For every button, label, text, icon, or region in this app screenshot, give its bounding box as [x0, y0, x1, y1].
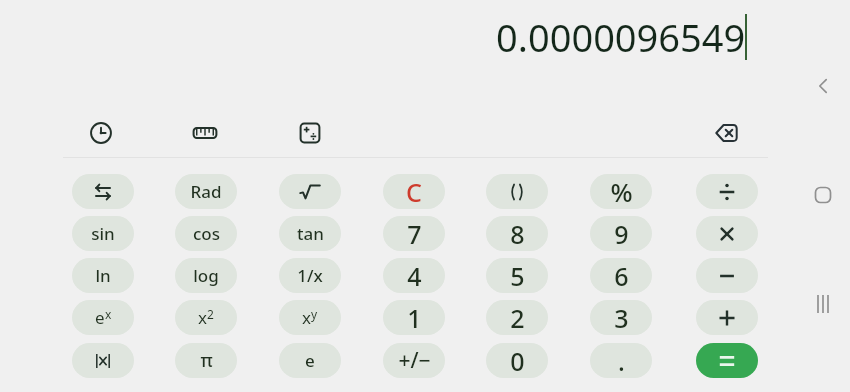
- button[interactable]: Parentheses: [486, 174, 548, 209]
- staticText: 5: [510, 259, 525, 293]
- button[interactable]: 6: [590, 258, 652, 293]
- button[interactable]: 2: [486, 300, 548, 335]
- staticText: C: [406, 175, 422, 209]
- button[interactable]: cos: [175, 216, 237, 251]
- staticText: 4: [407, 259, 422, 293]
- button[interactable]: e: [72, 300, 134, 335]
- staticText: cos: [193, 222, 220, 245]
- button[interactable]: 0: [486, 343, 548, 378]
- staticText: 6: [614, 259, 629, 293]
- staticText: +/−: [398, 346, 431, 375]
- staticText: 8: [510, 217, 525, 251]
- button[interactable]: 1: [383, 300, 445, 335]
- staticText: y: [311, 306, 318, 322]
- staticText: 3: [614, 301, 629, 335]
- button[interactable]: Swap: [72, 174, 134, 209]
- button[interactable]: x: [279, 300, 341, 335]
- button[interactable]: 3: [590, 300, 652, 335]
- staticText: x: [302, 306, 311, 329]
- button[interactable]: 1/x: [279, 258, 341, 293]
- button[interactable]: 9: [590, 216, 652, 251]
- button[interactable]: sin: [72, 216, 134, 251]
- button[interactable]: Plus: [696, 300, 758, 335]
- staticText: ln: [95, 264, 111, 287]
- button[interactable]: 7: [383, 216, 445, 251]
- button[interactable]: ln: [72, 258, 134, 293]
- staticText: x: [198, 306, 207, 329]
- button[interactable]: History: [79, 111, 123, 155]
- staticText: 9: [614, 217, 629, 251]
- staticText: 0.0000096549: [496, 11, 746, 63]
- staticText: π: [200, 348, 213, 373]
- staticText: x: [105, 306, 112, 322]
- button[interactable]: Minus: [696, 258, 758, 293]
- button[interactable]: Home: [801, 173, 845, 217]
- staticText: 0: [510, 344, 525, 378]
- button[interactable]: 8: [486, 216, 548, 251]
- staticText: 2: [510, 301, 525, 335]
- staticText: .: [618, 344, 625, 378]
- button[interactable]: 4: [383, 258, 445, 293]
- button[interactable]: Equals: [696, 343, 758, 378]
- staticText: 7: [407, 217, 422, 251]
- staticText: log: [193, 264, 219, 287]
- button[interactable]: Square root: [279, 174, 341, 209]
- button[interactable]: x: [175, 300, 237, 335]
- button[interactable]: Backspace: [704, 111, 748, 155]
- button[interactable]: Recent apps: [801, 282, 845, 326]
- staticText: tan: [297, 222, 324, 245]
- button[interactable]: Unit converter: [183, 111, 227, 155]
- staticText: %: [610, 174, 633, 209]
- staticText: sin: [91, 222, 115, 245]
- button[interactable]: tan: [279, 216, 341, 251]
- button[interactable]: e: [279, 343, 341, 378]
- button[interactable]: π: [175, 343, 237, 378]
- button[interactable]: %: [590, 174, 652, 209]
- staticText: e: [95, 306, 105, 329]
- button[interactable]: Absolute value: [72, 343, 134, 378]
- button[interactable]: +/−: [383, 343, 445, 378]
- button[interactable]: log: [175, 258, 237, 293]
- button[interactable]: Calculator mode: [288, 111, 332, 155]
- button[interactable]: C: [383, 174, 445, 209]
- button[interactable]: 5: [486, 258, 548, 293]
- staticText: 1: [407, 301, 422, 335]
- button[interactable]: Divide: [696, 174, 758, 209]
- button[interactable]: Back: [801, 64, 845, 108]
- button[interactable]: Multiply: [696, 216, 758, 251]
- staticText: 1/x: [297, 264, 323, 287]
- staticText: Rad: [190, 180, 222, 203]
- button[interactable]: Rad: [175, 174, 237, 209]
- staticText: 2: [207, 306, 214, 322]
- button[interactable]: .: [590, 343, 652, 378]
- staticText: e: [305, 349, 315, 372]
